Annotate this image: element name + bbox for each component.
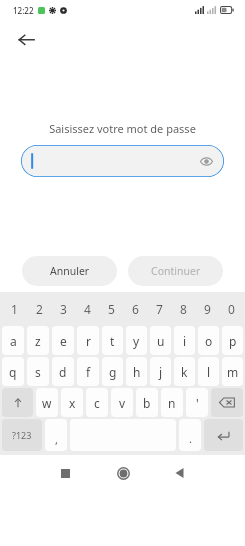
button[interactable]: Recents (52, 460, 78, 486)
staticText: , (55, 432, 58, 447)
staticText: x (69, 395, 76, 411)
staticText: o (205, 333, 213, 349)
button[interactable]: y (126, 326, 147, 355)
button[interactable]: 7 (147, 292, 171, 326)
staticText: 8 (180, 301, 187, 317)
button[interactable]: u (150, 326, 171, 355)
button[interactable]: ' (186, 388, 208, 417)
staticText: y (133, 333, 140, 349)
button[interactable]: Home (110, 460, 136, 486)
button[interactable]: i (174, 326, 195, 355)
staticText: g (109, 364, 117, 380)
button[interactable]: o (198, 326, 219, 355)
button[interactable]: x (61, 388, 83, 417)
staticText: e (60, 333, 67, 349)
staticText: v (119, 395, 126, 411)
button[interactable]: 2 (27, 292, 51, 326)
button[interactable]: a (2, 326, 24, 355)
button[interactable]: p (222, 326, 243, 355)
staticText: a (10, 333, 17, 349)
button[interactable]: 9 (195, 292, 219, 326)
staticText: 2 (36, 301, 43, 317)
staticText: ?123 (12, 429, 32, 441)
button[interactable]: l (198, 357, 219, 386)
staticText: d (59, 364, 67, 380)
staticText: r (86, 333, 91, 349)
staticText: 3 (60, 301, 67, 317)
button[interactable]: Back (10, 23, 42, 55)
button[interactable]: f (77, 357, 99, 386)
staticText: 1 (11, 301, 18, 317)
button[interactable]: e (52, 326, 74, 355)
staticText: m (227, 364, 239, 380)
button[interactable]: Backspace (211, 388, 243, 417)
staticText: f (86, 364, 91, 380)
staticText: n (168, 395, 176, 411)
button[interactable]: n (161, 388, 183, 417)
staticText: h (133, 364, 141, 380)
staticText: k (181, 364, 188, 380)
button[interactable]: w (36, 388, 58, 417)
button[interactable]: 0 (219, 292, 243, 326)
button[interactable]: Back (167, 460, 193, 486)
staticText: q (9, 364, 17, 380)
button[interactable]: ?123 (2, 419, 42, 451)
staticText: 7 (156, 301, 163, 317)
staticText: u (157, 333, 165, 349)
button[interactable]: r (77, 326, 99, 355)
button[interactable]: d (52, 357, 74, 386)
staticText: 6 (132, 301, 139, 317)
button[interactable]: k (174, 357, 195, 386)
button[interactable]: 5 (99, 292, 123, 326)
button[interactable]: h (126, 357, 147, 386)
staticText: 12:22 (13, 5, 34, 16)
button[interactable]: g (102, 357, 123, 386)
button[interactable]: Annuler (22, 256, 117, 286)
button[interactable]: m (222, 357, 243, 386)
staticText: w (42, 395, 52, 411)
staticText: b (143, 395, 151, 411)
staticText: Annuler (50, 264, 90, 278)
button[interactable]: Show password (196, 151, 216, 171)
staticText: z (35, 333, 41, 349)
button[interactable]: z (27, 326, 49, 355)
button[interactable]: j (150, 357, 171, 386)
staticText: Saisissez votre mot de passe (0, 121, 245, 136)
button[interactable]: 3 (51, 292, 75, 326)
staticText: 0 (228, 301, 235, 317)
button[interactable]: q (2, 357, 24, 386)
button[interactable]: v (111, 388, 133, 417)
staticText: j (159, 364, 163, 380)
staticText: 9 (204, 301, 211, 317)
button[interactable]: Show password (21, 145, 224, 177)
button[interactable]: s (27, 357, 49, 386)
staticText: Continuer (151, 264, 201, 278)
button[interactable]: b (136, 388, 158, 417)
staticText: c (94, 395, 100, 411)
staticText: t (110, 333, 115, 349)
button[interactable]: 6 (123, 292, 147, 326)
button[interactable]: Shift (2, 388, 33, 417)
staticText: i (183, 333, 187, 349)
button[interactable]: t (102, 326, 123, 355)
button[interactable]: 8 (171, 292, 195, 326)
button[interactable]: c (86, 388, 108, 417)
staticText: ' (196, 395, 199, 411)
staticText: s (35, 364, 41, 380)
button[interactable]: 4 (75, 292, 99, 326)
staticText: p (229, 333, 237, 349)
button[interactable]: 1 (2, 292, 27, 326)
staticText: 4 (84, 301, 91, 317)
staticText: 5 (108, 301, 115, 317)
button[interactable]: Continuer (128, 256, 223, 286)
staticText: . (189, 431, 192, 446)
staticText: l (207, 364, 211, 380)
button[interactable]: . (179, 419, 201, 451)
button[interactable]: Enter (204, 419, 243, 451)
button[interactable]: , (45, 419, 67, 451)
